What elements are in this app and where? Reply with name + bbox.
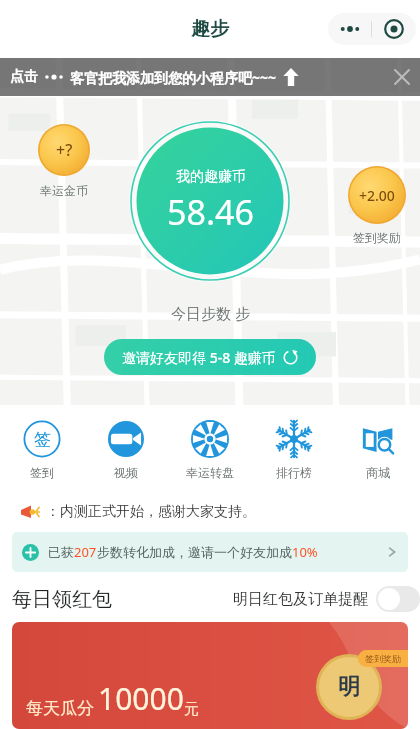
staticText: 视频 [114, 465, 138, 480]
staticText: 10000 [98, 678, 184, 719]
staticText: 点击 [10, 68, 38, 86]
staticText: 幸运转盘 [186, 465, 234, 480]
staticText: 58.46 [167, 189, 254, 235]
button[interactable]: 明日红包及订单提醒 [233, 586, 420, 612]
staticText: 10% [292, 543, 318, 561]
staticText: 今日步数 步 [171, 303, 250, 323]
button[interactable]: 明 [12, 622, 408, 729]
staticText: 排行榜 [276, 465, 312, 480]
staticText: +2.00 [359, 186, 395, 205]
staticText: 已获 [48, 544, 74, 560]
staticText: +? [56, 139, 73, 161]
staticText: 签到奖励 [365, 653, 401, 664]
button[interactable]: 已获 [12, 532, 408, 572]
button[interactable]: +? [38, 124, 90, 198]
button[interactable]: 我的趣赚币 [129, 120, 291, 282]
staticText: 幸运金币 [40, 183, 88, 198]
staticText: 明日红包及订单提醒 [233, 590, 368, 609]
button[interactable]: 幸运转盘 [168, 417, 252, 482]
staticText: 签 [34, 429, 51, 450]
staticText: 步数转化加成，邀请一个好友加成 [97, 544, 292, 560]
button[interactable]: 点击 [0, 58, 420, 96]
staticText: 元 [184, 700, 199, 719]
staticText: 我的趣赚币 [176, 168, 246, 186]
staticText: 邀请好友即得 5-8 趣赚币 [122, 348, 276, 367]
button[interactable]: ：内测正式开始，感谢大家支持。 [20, 502, 404, 522]
staticText: 每日领红包 [12, 587, 112, 612]
button[interactable]: 邀请好友即得 5-8 趣赚币 [104, 339, 316, 375]
other: Tomorrow reminder toggle [376, 586, 420, 612]
staticText: 签到奖励 [353, 230, 401, 245]
staticText: 签到 [30, 465, 54, 480]
staticText: 趣步 [191, 17, 229, 41]
button[interactable]: Close [392, 67, 412, 87]
staticText: 明 [338, 673, 360, 701]
staticText: ：内测正式开始，感谢大家支持。 [46, 503, 256, 521]
button[interactable]: +2.00 [348, 166, 406, 245]
button[interactable]: 商城 [336, 417, 420, 482]
button[interactable]: 视频 [84, 417, 168, 482]
button[interactable]: 排行榜 [252, 417, 336, 482]
staticText: 207 [74, 543, 97, 561]
staticText: 每天瓜分 [26, 698, 94, 719]
staticText: 商城 [366, 465, 390, 480]
button[interactable]: More and close mini program [328, 13, 416, 45]
button[interactable]: 签 [0, 417, 84, 482]
staticText: 客官把我添加到您的小程序吧~~~ [70, 68, 277, 87]
